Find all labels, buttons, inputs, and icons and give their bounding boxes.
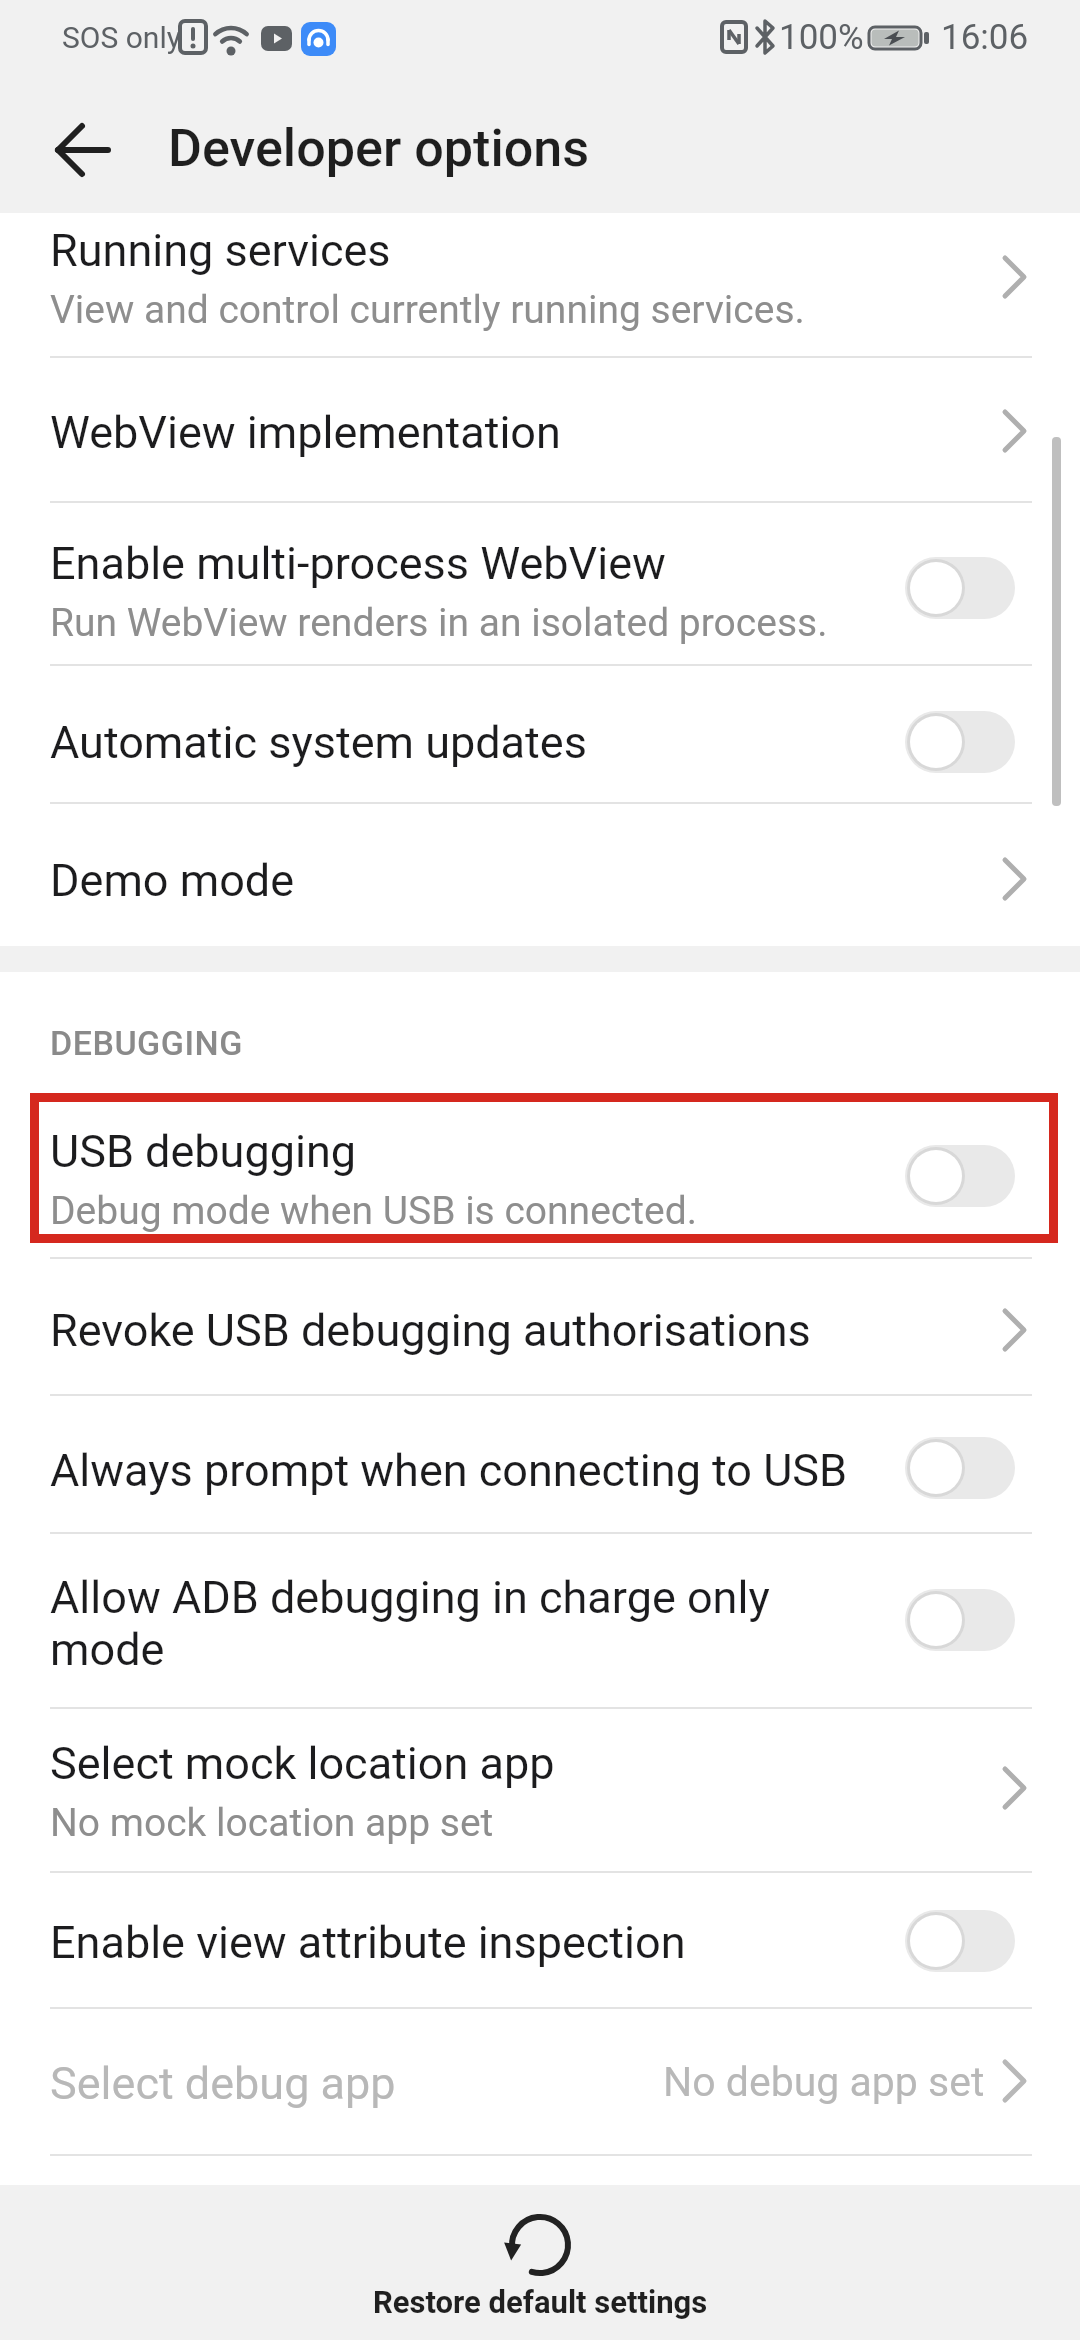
staticText: Restore default settings: [373, 2284, 708, 2320]
button[interactable]: USB debugging: [0, 1093, 1080, 1243]
staticText: Demo mode: [50, 854, 295, 907]
staticText: Select mock location app: [50, 1737, 555, 1790]
staticText: Allow ADB debugging in charge only mode: [50, 1571, 870, 1676]
staticText: Developer options: [168, 118, 590, 179]
button[interactable]: Enable view attribute inspection: [0, 1872, 1080, 2008]
staticText: View and control currently running servi…: [50, 287, 805, 333]
staticText: Enable view attribute inspection: [50, 1916, 686, 1969]
staticText: USB debugging: [50, 1125, 357, 1178]
staticText: No mock location app set: [50, 1800, 494, 1846]
button[interactable]: Enable multi-process WebView: [0, 502, 1080, 665]
staticText: DEBUGGING: [50, 1023, 243, 1063]
button[interactable]: Allow ADB debugging in charge only mode: [0, 1533, 1080, 1708]
button[interactable]: Revoke USB debugging authorisations: [0, 1258, 1080, 1395]
button[interactable]: Automatic system updates: [0, 665, 1080, 803]
button[interactable]: Demo mode: [0, 803, 1080, 946]
staticText: Select debug app: [50, 2057, 396, 2110]
button[interactable]: Select mock location app: [0, 1708, 1080, 1872]
staticText: Debug mode when USB is connected.: [50, 1188, 697, 1234]
button[interactable]: Running services: [0, 213, 1080, 357]
button[interactable]: Select debug app: [0, 2008, 1080, 2155]
button[interactable]: Always prompt when connecting to USB: [0, 1395, 1080, 1533]
staticText: No debug app set: [663, 2058, 985, 2106]
button[interactable]: WebView implementation: [0, 357, 1080, 502]
staticText: Run WebView renders in an isolated proce…: [50, 600, 828, 646]
staticText: WebView implementation: [50, 406, 561, 459]
staticText: SOS only: [62, 20, 181, 55]
button[interactable]: [36, 112, 126, 188]
staticText: Always prompt when connecting to USB: [50, 1444, 848, 1497]
staticText: Enable multi-process WebView: [50, 537, 666, 590]
staticText: 16:06: [941, 17, 1029, 58]
staticText: 100%: [779, 17, 864, 58]
button[interactable]: Restore default settings: [0, 2185, 1080, 2340]
staticText: Running services: [50, 224, 391, 277]
staticText: Revoke USB debugging authorisations: [50, 1304, 811, 1357]
staticText: Automatic system updates: [50, 716, 587, 769]
